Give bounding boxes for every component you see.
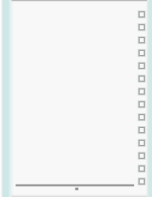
button[interactable]: 1 — [68, 185, 86, 195]
button[interactable]: More tools — [135, 175, 148, 187]
button[interactable]: Navigation rail — [0, 0, 13, 197]
button[interactable]: Image tool — [135, 34, 148, 46]
button[interactable]: Table tool — [135, 47, 148, 59]
button[interactable]: List tool — [135, 59, 148, 71]
button[interactable]: Stamp tool — [135, 124, 148, 136]
button[interactable]: Text tool — [135, 8, 148, 20]
button[interactable]: Signature tool — [135, 137, 148, 149]
button[interactable]: Shape tool — [135, 98, 148, 110]
button[interactable]: Comment tool — [135, 85, 148, 97]
button[interactable]: Link tool — [135, 72, 148, 84]
button[interactable]: Layout tool — [135, 149, 148, 161]
button[interactable]: Highlight tool — [135, 111, 148, 123]
staticText: 1 — [76, 188, 79, 193]
button[interactable]: Heading tool — [135, 21, 148, 33]
button[interactable]: Crop tool — [135, 162, 148, 174]
